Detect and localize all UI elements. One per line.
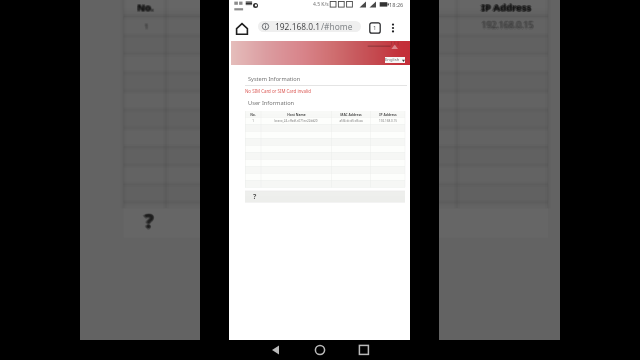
staticText: 18:26: [389, 1, 404, 9]
button[interactable]: Help: [251, 192, 259, 200]
staticText: 192.168.0.15: [480, 19, 533, 31]
button[interactable]: Home: [234, 21, 250, 37]
staticText: No.: [136, 2, 153, 15]
staticText: 192.168.0.15: [480, 19, 533, 31]
staticText: ?: [144, 208, 154, 234]
button[interactable]: More options: [387, 22, 399, 34]
staticText: No.: [137, 2, 154, 15]
staticText: No.: [138, 2, 155, 15]
staticText: No.: [250, 112, 256, 116]
staticText: ?: [144, 208, 154, 234]
staticText: IP Address: [480, 2, 531, 15]
staticText: a5f4:dc:d5:d6:aa: [339, 119, 363, 123]
staticText: Host Name: [232, 2, 286, 15]
button[interactable]: Back: [267, 341, 285, 359]
staticText: IP Address: [481, 1, 532, 14]
staticText: Host Name: [232, 1, 286, 14]
button[interactable]: 192.168.0.1: [258, 21, 361, 32]
staticText: Host Name: [231, 2, 285, 15]
staticText: IP Address: [481, 2, 532, 15]
staticText: No.: [137, 1, 154, 14]
staticText: ?: [145, 208, 155, 234]
staticText: Host Name: [287, 112, 306, 116]
staticText: IP Address: [481, 1, 532, 14]
staticText: 192.168.0.15: [481, 19, 534, 31]
staticText: /#home: [321, 21, 353, 32]
staticText: IP Address: [480, 0, 531, 13]
staticText: 1: [144, 19, 149, 30]
staticText: 1: [143, 20, 148, 31]
staticText: IP Address: [481, 0, 532, 13]
staticText: ?: [145, 209, 155, 235]
staticText: IP Address: [481, 2, 532, 15]
staticText: Host Name: [233, 0, 287, 13]
staticText: 192.168.0.15: [480, 20, 533, 32]
button[interactable]: Recents: [355, 341, 373, 359]
staticText: No.: [136, 1, 153, 14]
staticText: Host Name: [232, 1, 286, 14]
staticText: IP Address: [379, 112, 397, 116]
staticText: System Information: [248, 75, 301, 83]
staticText: Host Name: [232, 0, 286, 13]
staticText: ?: [145, 208, 155, 234]
staticText: 1: [252, 119, 254, 123]
staticText: ?: [142, 208, 152, 234]
staticText: No.: [137, 1, 154, 14]
staticText: User Information: [248, 99, 295, 107]
staticText: Host Name: [231, 0, 285, 13]
staticText: 192.168.0.15: [481, 19, 534, 31]
staticText: 4.5 K/s: [313, 1, 329, 8]
staticText: ?: [143, 208, 153, 234]
staticText: Host Name: [233, 1, 287, 14]
staticText: No.: [138, 0, 155, 13]
staticText: ?: [144, 207, 154, 233]
staticText: bravo_24-cffsdf-s071ee22dd20: [274, 119, 318, 123]
staticText: English: [385, 57, 400, 63]
button[interactable]: Home: [311, 341, 329, 359]
staticText: No.: [137, 0, 154, 13]
staticText: 192.168.0.15: [481, 21, 534, 33]
button[interactable]: Tabs: [369, 22, 381, 34]
staticText: Host Name: [233, 2, 287, 15]
staticText: 1: [143, 21, 148, 32]
staticText: 1: [145, 19, 150, 30]
staticText: 192.168.0.1: [275, 21, 321, 32]
staticText: 1: [144, 20, 149, 31]
staticText: No.: [136, 0, 153, 13]
staticText: Host Name: [231, 1, 285, 14]
staticText: IP Address: [481, 0, 532, 13]
staticText: 192.168.0.15: [481, 18, 534, 30]
staticText: 192.168.0.15: [482, 20, 535, 32]
staticText: 1: [145, 20, 150, 31]
staticText: 192.168.0.15: [482, 19, 535, 31]
staticText: IP Address: [479, 1, 530, 14]
staticText: ?: [253, 192, 257, 200]
button[interactable]: English: [385, 57, 405, 63]
staticText: 1: [144, 21, 149, 32]
staticText: IP Address: [482, 1, 533, 14]
staticText: No SIM Card or SIM Card invalid: [245, 88, 311, 94]
staticText: 1: [145, 21, 150, 32]
staticText: ?: [144, 210, 154, 236]
staticText: 192.168.0.15: [379, 119, 397, 123]
staticText: 1: [143, 19, 148, 30]
staticText: MAC Address: [340, 112, 362, 116]
staticText: No.: [138, 1, 155, 14]
staticText: 1: [144, 20, 149, 31]
staticText: 1: [373, 24, 377, 32]
staticText: 192.168.0.15: [482, 19, 535, 31]
staticText: ?: [143, 209, 153, 235]
